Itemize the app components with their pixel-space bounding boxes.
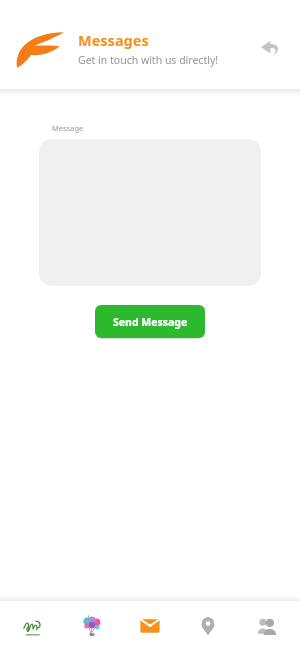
button[interactable]: Back	[254, 32, 286, 64]
staticText: Messages	[78, 30, 149, 50]
staticText: Send Message	[113, 315, 188, 329]
staticText: Get in touch with us directly!	[78, 53, 219, 67]
button[interactable]: App logo	[14, 26, 66, 70]
staticText: Message	[52, 123, 84, 133]
button[interactable]: Home	[8, 601, 58, 650]
button[interactable]: Locations	[183, 601, 233, 650]
button[interactable]: Send Message	[95, 305, 205, 338]
button[interactable]: Messages	[125, 601, 175, 650]
button[interactable]: Contacts	[242, 601, 292, 650]
button[interactable]: Gifts	[67, 601, 117, 650]
